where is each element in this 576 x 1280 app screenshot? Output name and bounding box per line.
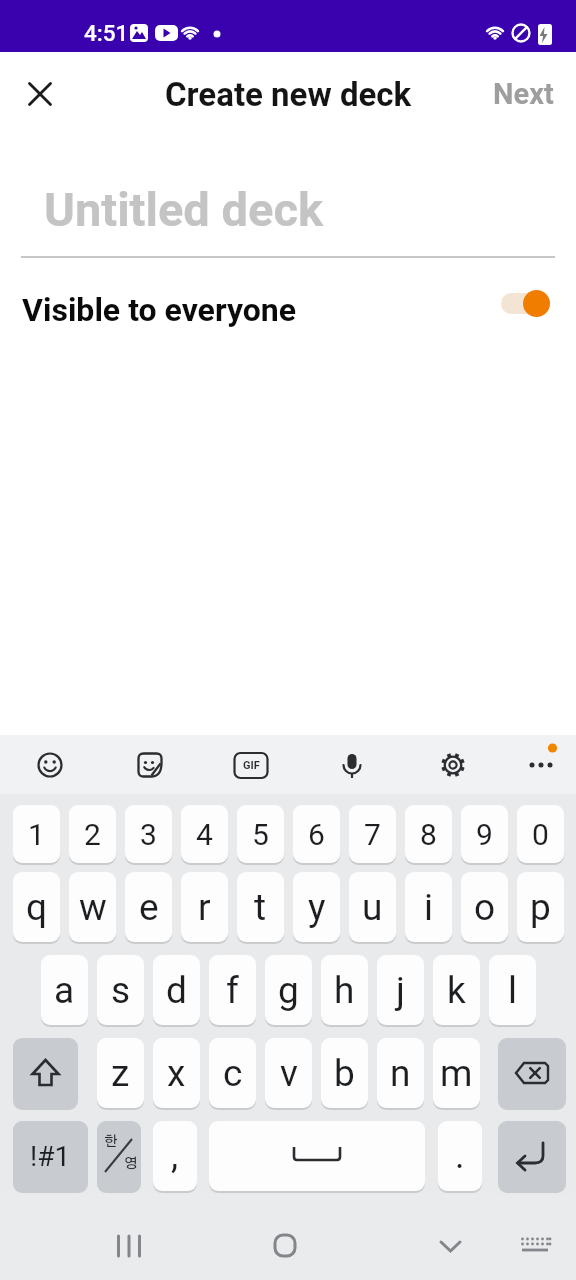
button[interactable]	[513, 1226, 557, 1266]
button[interactable]: p	[517, 872, 564, 942]
staticText: b	[334, 1052, 355, 1095]
staticText: t	[254, 886, 267, 929]
button[interactable]: o	[461, 872, 508, 942]
button[interactable]: 8	[405, 805, 452, 863]
button[interactable]: s	[97, 955, 144, 1025]
staticText: p	[530, 886, 551, 929]
staticText: j	[396, 969, 405, 1012]
staticText: e	[139, 886, 159, 929]
button[interactable]: w	[69, 872, 116, 942]
button[interactable]: Next	[476, 52, 576, 136]
button[interactable]	[426, 1222, 474, 1270]
button[interactable]: 7	[349, 805, 396, 863]
button[interactable]: Untitled deck	[21, 158, 555, 256]
button[interactable]: j	[377, 955, 424, 1025]
staticText: n	[390, 1052, 411, 1095]
button[interactable]: l	[489, 955, 536, 1025]
staticText: 7	[364, 817, 381, 852]
button[interactable]	[28, 743, 72, 787]
button[interactable]	[330, 743, 374, 787]
staticText: y	[308, 886, 326, 929]
staticText: Visible to everyone	[22, 291, 297, 329]
staticText: s	[111, 969, 131, 1012]
button[interactable]: d	[153, 955, 200, 1025]
staticText: Create new deck	[165, 75, 412, 114]
staticText: 한	[104, 1135, 118, 1149]
button[interactable]: q	[13, 872, 60, 942]
staticText: i	[424, 886, 433, 929]
button[interactable]: z	[97, 1038, 144, 1108]
staticText: m	[440, 1052, 473, 1095]
staticText: d	[166, 969, 187, 1012]
staticText: 4	[196, 817, 213, 852]
staticText: Next	[493, 77, 554, 111]
staticText: 6	[308, 817, 325, 852]
button[interactable]: r	[181, 872, 228, 942]
button[interactable]: !#1	[13, 1121, 88, 1191]
button[interactable]: ,	[153, 1121, 197, 1191]
button[interactable]: v	[265, 1038, 312, 1108]
button[interactable]	[498, 1121, 566, 1191]
button[interactable]: n	[377, 1038, 424, 1108]
button[interactable]: a	[41, 955, 88, 1025]
staticText: ,	[171, 1135, 179, 1177]
button[interactable]: c	[209, 1038, 256, 1108]
button[interactable]: k	[433, 955, 480, 1025]
staticText: w	[79, 886, 107, 929]
button[interactable]	[520, 743, 568, 787]
staticText: 8	[420, 817, 437, 852]
button[interactable]: h	[321, 955, 368, 1025]
staticText: u	[362, 886, 383, 929]
button[interactable]	[209, 1121, 425, 1191]
button[interactable]: 5	[237, 805, 284, 863]
staticText: z	[111, 1052, 130, 1095]
button[interactable]: Visible to everyone	[0, 270, 576, 336]
staticText: 4:51	[84, 20, 129, 46]
button[interactable]: .	[438, 1121, 482, 1191]
staticText: r	[198, 886, 211, 929]
button[interactable]: 4	[181, 805, 228, 863]
staticText: h	[334, 969, 355, 1012]
button[interactable]: y	[293, 872, 340, 942]
button[interactable]: x	[153, 1038, 200, 1108]
button[interactable]: 9	[461, 805, 508, 863]
button[interactable]: 6	[293, 805, 340, 863]
button[interactable]	[498, 1038, 566, 1108]
button[interactable]	[431, 743, 475, 787]
staticText: 1	[28, 817, 45, 852]
staticText: 영	[124, 1157, 138, 1171]
button[interactable]: i	[405, 872, 452, 942]
button[interactable]: 1	[13, 805, 60, 863]
staticText: .	[455, 1135, 465, 1177]
staticText: x	[167, 1052, 186, 1095]
button[interactable]: 2	[69, 805, 116, 863]
button[interactable]: GIF	[229, 743, 273, 787]
button[interactable]: g	[265, 955, 312, 1025]
button[interactable]: b	[321, 1038, 368, 1108]
staticText: g	[278, 969, 299, 1012]
button[interactable]: e	[125, 872, 172, 942]
button[interactable]	[13, 1038, 78, 1108]
button[interactable]	[16, 70, 64, 118]
staticText: v	[280, 1052, 298, 1095]
button[interactable]	[97, 1121, 141, 1191]
staticText: GIF	[243, 759, 260, 772]
staticText: o	[474, 886, 496, 929]
button[interactable]: f	[209, 955, 256, 1025]
staticText: Untitled deck	[44, 182, 324, 237]
button[interactable]: 3	[125, 805, 172, 863]
staticText: f	[226, 969, 239, 1012]
button[interactable]	[261, 1222, 309, 1270]
button[interactable]: 0	[517, 805, 564, 863]
staticText: 3	[140, 817, 157, 852]
staticText: !#1	[30, 1140, 71, 1173]
button[interactable]	[105, 1222, 153, 1270]
staticText: q	[26, 886, 48, 929]
button[interactable]	[128, 743, 172, 787]
button[interactable]: u	[349, 872, 396, 942]
staticText: k	[447, 969, 466, 1012]
staticText: a	[54, 969, 75, 1012]
staticText: 5	[252, 817, 269, 852]
button[interactable]: m	[433, 1038, 480, 1108]
button[interactable]: t	[237, 872, 284, 942]
